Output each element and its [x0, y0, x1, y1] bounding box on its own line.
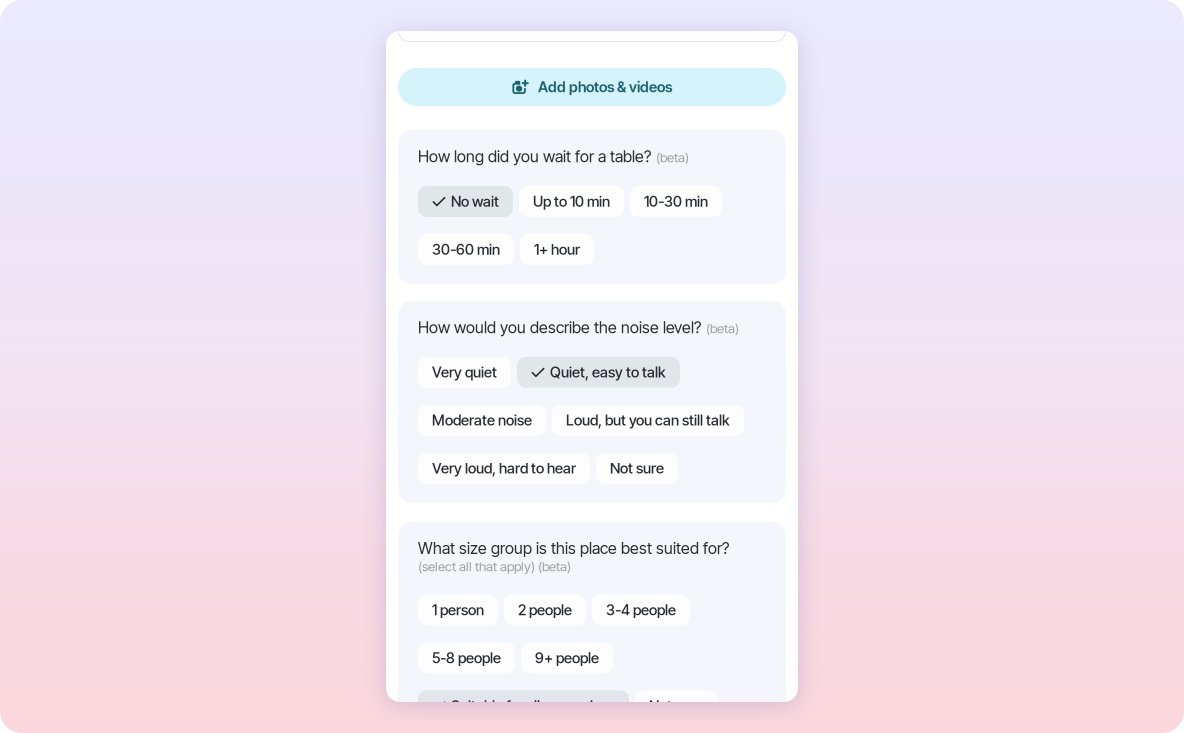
- staticText: 10-30 min: [644, 193, 708, 210]
- staticText: Up to 10 min: [533, 193, 610, 210]
- staticText: Moderate noise: [432, 412, 532, 429]
- staticText: Very loud, hard to hear: [432, 460, 576, 477]
- button[interactable]: Very quiet: [418, 357, 511, 388]
- staticText: Add photos & videos: [538, 78, 672, 96]
- button[interactable]: 9+ people: [521, 642, 613, 673]
- button[interactable]: Not sure: [596, 453, 678, 484]
- staticText: 5-8 people: [432, 649, 501, 666]
- button[interactable]: Up to 10 min: [519, 186, 624, 217]
- button[interactable]: No wait: [418, 186, 513, 217]
- staticText: Not sure: [649, 697, 703, 714]
- staticText: 9+ people: [535, 649, 599, 666]
- staticText: 1 person: [432, 601, 484, 618]
- button[interactable]: Very loud, hard to hear: [418, 453, 590, 484]
- staticText: (beta): [706, 320, 739, 336]
- button[interactable]: Add photos & videos: [398, 68, 786, 106]
- staticText: Not sure: [610, 460, 664, 477]
- button[interactable]: 5-8 people: [418, 642, 515, 673]
- button[interactable]: 2 people: [504, 594, 586, 625]
- staticText: How long did you wait for a table?: [418, 147, 651, 166]
- staticText: Very quiet: [432, 364, 497, 381]
- button[interactable]: Not sure: [635, 690, 717, 721]
- button[interactable]: 1+ hour: [520, 234, 594, 265]
- staticText: 1+ hour: [534, 241, 580, 258]
- staticText: Loud, but you can still talk: [566, 412, 730, 429]
- staticText: 2 people: [518, 601, 572, 618]
- staticText: (select all that apply) (beta): [418, 559, 571, 574]
- button[interactable]: Moderate noise: [418, 405, 546, 436]
- staticText: No wait: [451, 193, 499, 210]
- button[interactable]: Loud, but you can still talk: [552, 405, 744, 436]
- staticText: 3-4 people: [606, 601, 676, 618]
- button[interactable]: 30-60 min: [418, 234, 514, 265]
- staticText: 30-60 min: [432, 241, 500, 258]
- button[interactable]: 1 person: [418, 594, 498, 625]
- staticText: Suitable for all group sizes: [451, 697, 615, 714]
- staticText: (beta): [656, 149, 689, 165]
- staticText: What size group is this place best suite…: [418, 539, 729, 558]
- button[interactable]: Quiet, easy to talk: [517, 357, 680, 388]
- button[interactable]: 3-4 people: [592, 594, 690, 625]
- button[interactable]: Suitable for all group sizes: [418, 690, 629, 721]
- staticText: How would you describe the noise level?: [418, 318, 701, 337]
- button[interactable]: 10-30 min: [630, 186, 722, 217]
- staticText: Quiet, easy to talk: [550, 364, 666, 381]
